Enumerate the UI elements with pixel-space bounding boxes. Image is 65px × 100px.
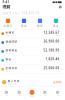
staticText: 黄金: [53, 24, 59, 27]
button[interactable]: 稳健理财: [0, 38, 64, 47]
button[interactable]: 黄金: [48, 18, 64, 28]
staticText: +0.82: [55, 35, 59, 36]
staticText: ›: [61, 67, 62, 71]
staticText: 股票: [37, 24, 43, 27]
button[interactable]: 定期存款: [0, 65, 64, 74]
staticText: 36,900.00: [43, 40, 59, 43]
staticText: 七日年化 1.52%: [5, 35, 13, 36]
button[interactable]: More: [59, 6, 62, 8]
staticText: 余额宝: [3, 24, 12, 27]
button[interactable]: 首页: [0, 88, 13, 99]
staticText: 首页: [5, 95, 7, 96]
staticText: 去领取: [53, 80, 62, 84]
staticText: ›: [61, 32, 62, 35]
staticText: 余额宝: [5, 31, 14, 34]
staticText: +4.10: [55, 44, 59, 45]
staticText: 新人专享: [8, 79, 20, 83]
staticText: 首投送 88 元红包: [8, 83, 16, 85]
staticText: ›: [61, 50, 62, 53]
button[interactable]: 理财: [13, 88, 26, 99]
staticText: 黄金: [5, 58, 11, 61]
staticText: 定期存款: [5, 67, 17, 70]
staticText: 今日 +1.04%: [5, 52, 12, 54]
staticText: 扫一扫: [30, 95, 33, 97]
staticText: 25,000.00: [43, 66, 59, 70]
staticText: 理财: [18, 95, 20, 96]
staticText: -0.31: [56, 61, 59, 63]
button[interactable]: 股票基金: [0, 47, 64, 56]
staticText: 12,345.67: [43, 31, 59, 34]
button[interactable]: 黄金: [0, 56, 64, 65]
button[interactable]: 余额宝: [0, 18, 16, 28]
staticText: 到期 2025-08: [5, 70, 13, 72]
staticText: 股票基金: [5, 49, 17, 52]
staticText: 总资产（元） 128,456.78: [2, 11, 39, 15]
button[interactable]: 余额宝: [0, 29, 64, 38]
button[interactable]: 我的: [51, 88, 64, 99]
staticText: +12.6: [55, 52, 59, 54]
staticText: ›: [61, 41, 62, 44]
staticText: 9:41: [2, 0, 9, 4]
button[interactable]: 扫一扫: [26, 88, 38, 99]
staticText: 基金: [21, 24, 27, 27]
button[interactable]: 股票: [32, 18, 48, 28]
staticText: ›: [61, 59, 62, 62]
staticText: 持有 3.20 克: [5, 61, 11, 63]
button[interactable]: 新人专享: [0, 78, 64, 87]
staticText: +1.95: [55, 70, 59, 72]
button[interactable]: 消息: [38, 88, 51, 99]
staticText: 52,180.90: [43, 49, 59, 52]
staticText: 1,820.40: [45, 57, 59, 61]
button[interactable]: 基金: [16, 18, 32, 28]
staticText: 稳健理财: [5, 40, 17, 43]
staticText: 理财: [2, 4, 10, 9]
staticText: 我的: [57, 95, 59, 96]
